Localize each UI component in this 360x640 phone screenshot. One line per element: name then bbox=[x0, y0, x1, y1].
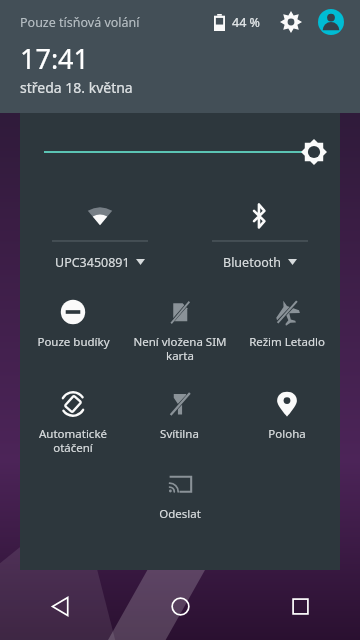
button[interactable]: Recent apps bbox=[240, 572, 360, 640]
staticText: Pouze budíky bbox=[37, 334, 110, 350]
button[interactable]: Poloha bbox=[233, 381, 340, 442]
button[interactable]: Settings bbox=[274, 5, 308, 39]
staticText: Pouze tísňová volání bbox=[20, 14, 140, 31]
button[interactable]: Pouze budíky bbox=[20, 289, 126, 350]
staticText: Odeslat bbox=[159, 506, 201, 522]
button[interactable]: Back bbox=[0, 572, 120, 640]
staticText: Bluetooth bbox=[223, 254, 282, 271]
button[interactable]: User profile bbox=[314, 5, 348, 39]
button[interactable]: Home bbox=[120, 572, 240, 640]
button[interactable]: Brightness bbox=[20, 113, 340, 191]
button[interactable]: UPC3450891 bbox=[20, 191, 180, 282]
staticText: středa 18. května bbox=[20, 78, 133, 97]
button[interactable]: Bluetooth bbox=[180, 191, 340, 282]
staticText: Není vložena SIM karta bbox=[133, 334, 227, 363]
staticText: 44 % bbox=[232, 14, 260, 31]
staticText: Režim Letadlo bbox=[249, 334, 325, 350]
button[interactable]: Automatické otáčení bbox=[20, 381, 126, 455]
staticText: Poloha bbox=[268, 426, 306, 442]
staticText: 17:41 bbox=[20, 40, 90, 77]
staticText: UPC3450891 bbox=[55, 254, 130, 271]
button[interactable]: Režim Letadlo bbox=[233, 289, 340, 350]
staticText: Svítilna bbox=[160, 426, 199, 442]
button[interactable]: Není vložena SIM karta bbox=[126, 289, 233, 363]
button[interactable]: Odeslat bbox=[126, 461, 233, 522]
staticText: Automatické otáčení bbox=[24, 426, 122, 455]
button[interactable]: Svítilna bbox=[126, 381, 233, 442]
